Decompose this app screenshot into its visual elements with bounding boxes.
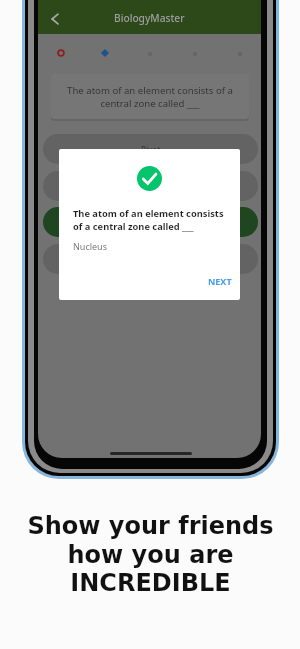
staticText: BiologyMaster <box>114 11 185 25</box>
staticText: Kernel <box>138 181 163 192</box>
staticText: The atom of an element consists of a cen… <box>73 207 224 233</box>
button[interactable]: Nucleus <box>43 207 258 237</box>
staticText: Nucleus <box>73 240 107 252</box>
staticText: The atom of an element consists of a cen… <box>67 84 233 110</box>
staticText: Nucleus <box>135 217 166 228</box>
button[interactable]: Back <box>38 0 72 34</box>
button[interactable]: Center <box>43 244 258 274</box>
staticText: Show your friends how you are INCREDIBLE <box>27 512 274 596</box>
button[interactable]: Kernel <box>43 171 258 201</box>
staticText: NEXT <box>208 275 232 287</box>
button[interactable]: Pivot <box>43 134 258 164</box>
staticText: Pivot <box>141 144 161 155</box>
button[interactable]: NEXT <box>204 271 236 291</box>
